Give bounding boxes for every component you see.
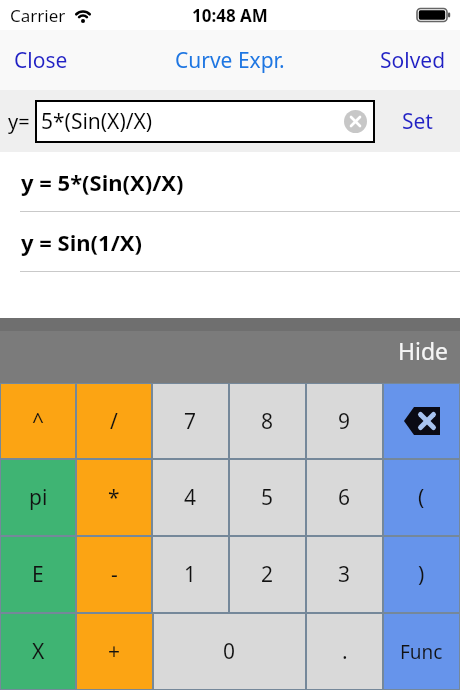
staticText: . <box>342 637 348 666</box>
staticText: Carrier <box>10 4 66 27</box>
staticText: 6 <box>338 483 351 512</box>
staticText: pi <box>29 483 48 512</box>
staticText: 2 <box>261 560 274 589</box>
staticText: Close <box>14 46 68 75</box>
staticText: Curve Expr. <box>175 46 285 75</box>
staticText: Set <box>402 107 433 136</box>
staticText: Hide <box>398 335 449 366</box>
staticText: ) <box>418 560 425 589</box>
staticText: y= <box>8 108 30 135</box>
staticText: 7 <box>184 407 197 436</box>
staticText: + <box>108 637 121 666</box>
staticText: * <box>108 483 120 512</box>
staticText: Func <box>400 639 443 665</box>
staticText: ( <box>418 483 425 512</box>
staticText: y = 5*(Sin(X)/X) <box>21 167 184 197</box>
staticText: 9 <box>338 407 351 436</box>
staticText: ^ <box>32 407 45 436</box>
staticText: Solved <box>380 46 446 75</box>
staticText: E <box>32 560 44 589</box>
staticText: 0 <box>223 637 236 666</box>
staticText: - <box>111 560 118 589</box>
staticText: 5 <box>261 483 274 512</box>
staticText: X <box>32 637 45 666</box>
staticText: 4 <box>184 483 197 512</box>
staticText: 5*(Sin(X)/X) <box>41 107 153 136</box>
staticText: y = Sin(1/X) <box>21 227 142 257</box>
staticText: 10:48 AM <box>192 4 268 27</box>
staticText: / <box>110 407 118 436</box>
staticText: 8 <box>261 407 274 436</box>
staticText: 1 <box>184 560 197 589</box>
staticText: 3 <box>338 560 351 589</box>
